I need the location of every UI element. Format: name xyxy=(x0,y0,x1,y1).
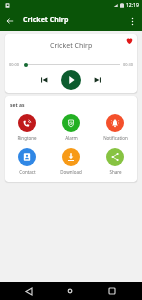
button[interactable]: Next xyxy=(91,73,105,87)
button[interactable]: Recent apps xyxy=(103,282,121,300)
staticText: Contact xyxy=(19,169,36,175)
button[interactable]: Favorite xyxy=(125,36,134,45)
button[interactable]: Download xyxy=(49,148,93,175)
staticText: Alarm xyxy=(65,135,78,141)
button[interactable]: Alarm xyxy=(49,114,93,141)
button[interactable]: Play xyxy=(61,70,81,90)
staticText: Cricket Chirp xyxy=(50,41,93,51)
button[interactable]: Notification xyxy=(93,114,137,141)
staticText: 00:30 xyxy=(123,62,133,67)
button[interactable]: Back xyxy=(20,282,38,300)
staticText: Share xyxy=(109,169,122,175)
button[interactable]: More options xyxy=(122,11,142,31)
button[interactable]: Share xyxy=(93,148,137,175)
button[interactable]: Contact xyxy=(5,148,49,175)
button[interactable]: Back xyxy=(0,11,20,31)
staticText: 00:00 xyxy=(9,62,19,67)
staticText: Notification xyxy=(103,135,128,141)
staticText: Cricket Chirp xyxy=(23,15,69,25)
staticText: set as xyxy=(10,102,25,109)
button[interactable]: Home xyxy=(61,282,79,300)
staticText: Download xyxy=(60,169,82,175)
button[interactable]: Ringtone xyxy=(5,114,49,141)
staticText: Ringtone xyxy=(17,135,37,141)
button[interactable]: Previous xyxy=(37,73,51,87)
staticText: 12:19 xyxy=(126,2,139,9)
